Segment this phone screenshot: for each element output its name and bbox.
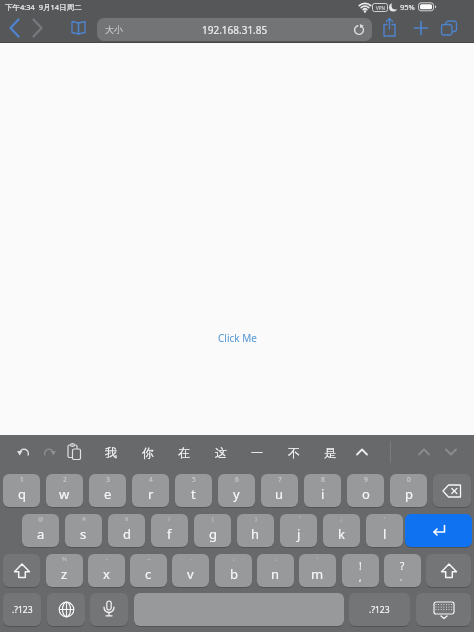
- button[interactable]: 8: [304, 474, 341, 507]
- button[interactable]: @: [22, 514, 59, 547]
- button[interactable]: 4: [132, 474, 169, 507]
- staticText: b: [230, 565, 238, 583]
- button[interactable]: 5: [175, 474, 212, 507]
- staticText: 「: [296, 515, 302, 523]
- button[interactable]: 在: [169, 438, 199, 466]
- button[interactable]: :: [257, 554, 294, 587]
- button[interactable]: [41, 446, 57, 459]
- staticText: x: [103, 565, 110, 583]
- staticText: 2: [63, 475, 67, 484]
- button[interactable]: 不: [279, 438, 309, 466]
- staticText: 」: [339, 515, 345, 523]
- staticText: .?123: [369, 604, 390, 616]
- staticText: 4: [149, 475, 153, 484]
- staticText: j: [297, 525, 301, 543]
- button[interactable]: [67, 443, 82, 461]
- staticText: .?123: [12, 604, 33, 616]
- button[interactable]: ¥: [108, 514, 145, 547]
- button[interactable]: [405, 514, 472, 547]
- button[interactable]: .?123: [3, 593, 41, 626]
- staticText: t: [191, 485, 196, 503]
- staticText: 95%: [400, 2, 415, 12]
- button[interactable]: [16, 446, 32, 459]
- button[interactable]: 1: [3, 474, 40, 507]
- button[interactable]: 」: [323, 514, 360, 547]
- staticText: k: [338, 525, 345, 543]
- button[interactable]: [426, 554, 471, 587]
- staticText: 8: [321, 475, 325, 484]
- button[interactable]: ~: [130, 554, 167, 587]
- button[interactable]: [5, 17, 25, 39]
- button[interactable]: %: [46, 554, 83, 587]
- button[interactable]: -: [88, 554, 125, 587]
- button[interactable]: [354, 441, 370, 463]
- staticText: h: [251, 525, 260, 543]
- staticText: 0: [407, 475, 411, 484]
- button[interactable]: 0: [390, 474, 427, 507]
- staticText: i: [321, 485, 325, 503]
- button[interactable]: [3, 554, 40, 587]
- staticText: ): [255, 515, 257, 523]
- staticText: (: [212, 515, 214, 523]
- button[interactable]: [47, 593, 85, 626]
- staticText: r: [148, 485, 154, 503]
- button[interactable]: 3: [89, 474, 126, 507]
- button[interactable]: [433, 474, 471, 507]
- staticText: 不: [288, 445, 300, 460]
- button[interactable]: 我: [96, 438, 126, 466]
- staticText: ·: [190, 555, 192, 563]
- button[interactable]: [440, 20, 458, 36]
- button[interactable]: 这: [206, 438, 236, 466]
- button[interactable]: 9: [347, 474, 384, 507]
- button[interactable]: 你: [133, 438, 163, 466]
- button[interactable]: [27, 17, 47, 39]
- button[interactable]: ;: [215, 554, 252, 587]
- staticText: 6: [235, 475, 239, 484]
- staticText: w: [59, 485, 70, 503]
- button[interactable]: 7: [261, 474, 298, 507]
- staticText: a: [37, 525, 45, 543]
- button[interactable]: [413, 20, 429, 36]
- staticText: e: [104, 485, 112, 503]
- button[interactable]: 2: [46, 474, 83, 507]
- button[interactable]: 大小: [97, 18, 372, 41]
- button[interactable]: #: [65, 514, 102, 547]
- button[interactable]: [416, 441, 432, 463]
- button[interactable]: 是: [315, 438, 345, 466]
- button[interactable]: 一: [242, 438, 272, 466]
- staticText: 5: [192, 475, 196, 484]
- staticText: o: [362, 485, 370, 503]
- staticText: 1: [20, 475, 24, 484]
- button[interactable]: ': [299, 554, 336, 587]
- staticText: 我: [105, 445, 117, 460]
- button[interactable]: ?: [384, 554, 421, 587]
- button[interactable]: [134, 593, 344, 626]
- button[interactable]: 「: [280, 514, 317, 547]
- button[interactable]: (: [194, 514, 231, 547]
- staticText: p: [405, 485, 413, 503]
- button[interactable]: [382, 17, 397, 38]
- button[interactable]: [90, 593, 128, 626]
- button[interactable]: [69, 20, 88, 36]
- button[interactable]: 6: [218, 474, 255, 507]
- staticText: /: [168, 515, 171, 523]
- button[interactable]: [443, 441, 459, 463]
- staticText: f: [167, 525, 172, 543]
- button[interactable]: [416, 593, 471, 626]
- staticText: 大小: [105, 24, 123, 35]
- staticText: ~: [147, 555, 151, 563]
- staticText: !: [359, 559, 362, 573]
- staticText: 。: [400, 574, 406, 582]
- staticText: 你: [142, 445, 154, 460]
- button[interactable]: !: [342, 554, 379, 587]
- staticText: d: [123, 525, 131, 543]
- staticText: l: [383, 525, 387, 543]
- button[interactable]: .?123: [349, 593, 410, 626]
- staticText: 一: [251, 445, 263, 460]
- button[interactable]: ': [366, 514, 403, 547]
- button[interactable]: Click Me: [218, 331, 257, 345]
- button[interactable]: ·: [172, 554, 209, 587]
- button[interactable]: ): [237, 514, 274, 547]
- staticText: q: [18, 485, 26, 503]
- button[interactable]: /: [151, 514, 188, 547]
